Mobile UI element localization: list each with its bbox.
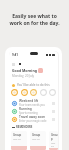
staticText: Group xyxy=(32,133,41,137)
button[interactable]: Group xyxy=(30,131,46,150)
staticText: task list xyxy=(32,138,40,141)
button[interactable]: Weekend lift xyxy=(12,99,55,107)
button[interactable]: Travel away soon xyxy=(12,115,55,123)
staticText: Good Morning xyxy=(12,68,37,73)
button[interactable]: Category xyxy=(30,89,37,96)
staticText: Running xyxy=(19,107,32,111)
staticText: Travel away soon xyxy=(19,115,46,119)
staticText: REMINDERS xyxy=(16,125,33,129)
staticText: 9:41 xyxy=(12,53,18,57)
staticText: You'll be able to do this xyxy=(17,83,50,87)
staticText: Easily see what to work on for the day. xyxy=(9,13,60,27)
button[interactable]: Group xyxy=(11,131,27,150)
button[interactable]: Profile xyxy=(38,68,43,73)
button[interactable]: Running xyxy=(12,107,55,115)
staticText: Group xyxy=(13,133,22,137)
button[interactable]: Group xyxy=(49,131,58,150)
staticText: task list xyxy=(51,142,58,148)
staticText: Sports meeting xyxy=(19,111,38,115)
staticText: Monday, 20 July xyxy=(12,74,35,78)
staticText: task list xyxy=(13,138,21,141)
staticText: Your team needs you xyxy=(19,103,45,107)
staticText: Group xyxy=(51,133,58,141)
button[interactable]: Category xyxy=(11,89,18,96)
button[interactable]: Category xyxy=(40,89,47,96)
staticText: Enter your magic code xyxy=(19,119,47,123)
button[interactable]: Category xyxy=(21,89,28,96)
button[interactable]: Category xyxy=(49,89,56,96)
staticText: Weekend lift xyxy=(19,99,39,103)
